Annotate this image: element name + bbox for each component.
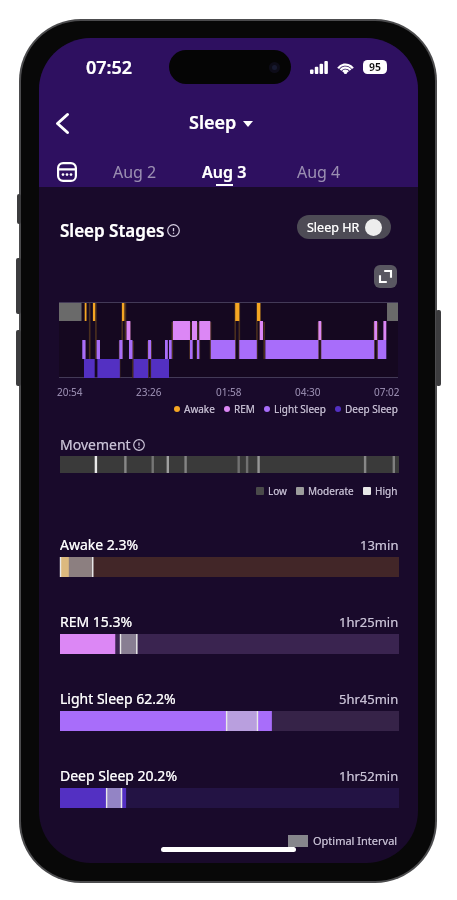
staticText: 01:58 xyxy=(216,385,242,399)
button[interactable]: Aug 4 xyxy=(275,150,363,194)
staticText: 1hr52min xyxy=(339,767,399,785)
button[interactable]: Calendar xyxy=(45,150,89,194)
staticText: Aug 3 xyxy=(202,161,247,183)
staticText: 20:54 xyxy=(57,385,83,399)
staticText: Low xyxy=(268,484,287,498)
staticText: 07:02 xyxy=(374,385,400,399)
staticText: Optimal Interval xyxy=(313,833,398,848)
staticText: Light Sleep xyxy=(274,402,326,416)
staticText: Moderate xyxy=(308,484,354,498)
staticText: 23:26 xyxy=(136,385,162,399)
staticText: Deep Sleep xyxy=(345,402,398,416)
staticText: 04:30 xyxy=(295,385,321,399)
staticText: 95 xyxy=(369,60,382,74)
staticText: 13min xyxy=(360,536,399,554)
staticText: REM 15.3% xyxy=(60,612,133,631)
button[interactable]: Back xyxy=(39,100,85,146)
button[interactable]: Aug 3 xyxy=(180,150,268,194)
staticText: Awake xyxy=(184,402,215,416)
staticText: Awake 2.3% xyxy=(60,535,139,554)
staticText: REM xyxy=(234,402,255,416)
staticText: Sleep xyxy=(189,110,237,135)
button[interactable]: Sleep HR xyxy=(297,215,391,239)
staticText: Light Sleep 62.2% xyxy=(60,689,176,708)
staticText: Movement xyxy=(60,435,131,454)
staticText: 5hr45min xyxy=(339,690,399,708)
button[interactable]: Aug 2 xyxy=(91,150,179,194)
staticText: Aug 4 xyxy=(297,161,341,183)
staticText: 07:52 xyxy=(86,55,133,80)
staticText: Sleep Stages xyxy=(60,219,165,242)
staticText: High xyxy=(375,484,398,498)
staticText: Deep Sleep 20.2% xyxy=(60,766,178,785)
button[interactable]: Sleep xyxy=(189,110,253,135)
staticText: Aug 2 xyxy=(113,161,157,183)
button[interactable]: Expand chart xyxy=(374,265,397,288)
staticText: Sleep HR xyxy=(307,219,360,236)
staticText: 1hr25min xyxy=(339,613,399,631)
